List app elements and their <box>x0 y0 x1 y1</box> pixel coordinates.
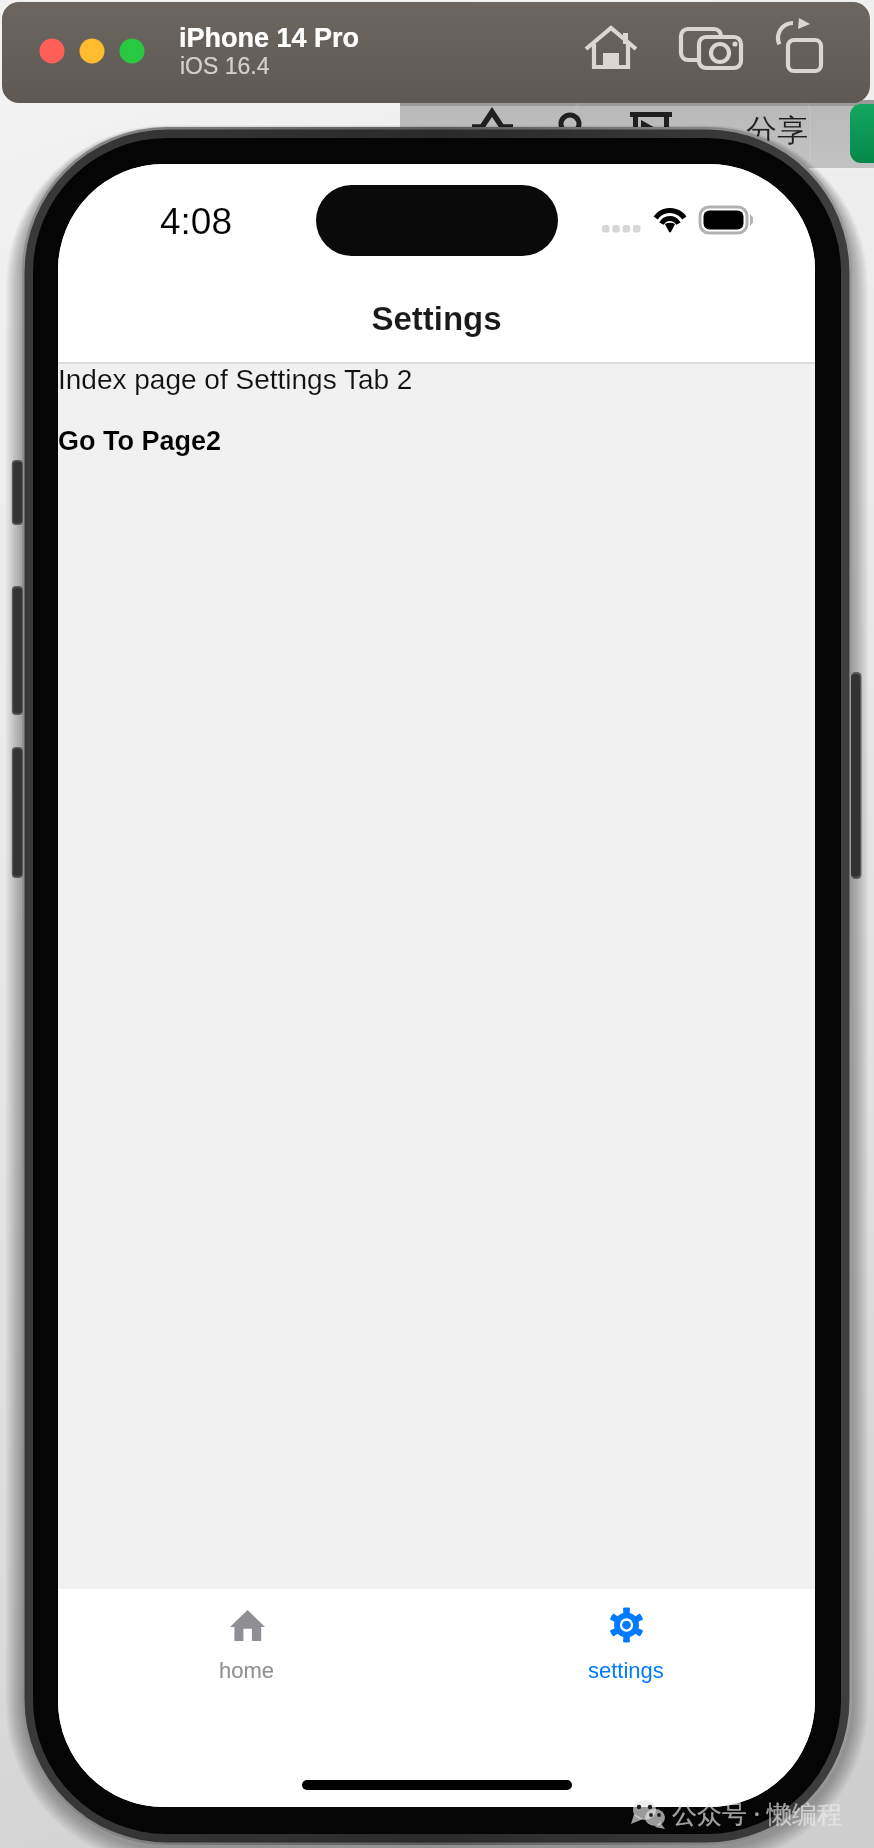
staticText: 公众号 · 懒编程 <box>672 1796 842 1830</box>
staticText: 分享 <box>746 111 808 150</box>
staticText: Settings <box>58 300 815 337</box>
button[interactable]: settings <box>436 1589 815 1683</box>
staticText: Go To Page2 <box>58 426 222 456</box>
staticText: iOS 16.4 <box>180 53 270 79</box>
button[interactable]: Go To Page2 <box>58 426 222 456</box>
staticText: settings <box>588 1658 664 1683</box>
staticText: 4:08 <box>160 201 233 242</box>
button[interactable]: home <box>58 1589 436 1683</box>
staticText: home <box>219 1658 275 1683</box>
staticText: iPhone 14 Pro <box>179 23 360 53</box>
staticText: Index page of Settings Tab 2 <box>58 364 413 395</box>
